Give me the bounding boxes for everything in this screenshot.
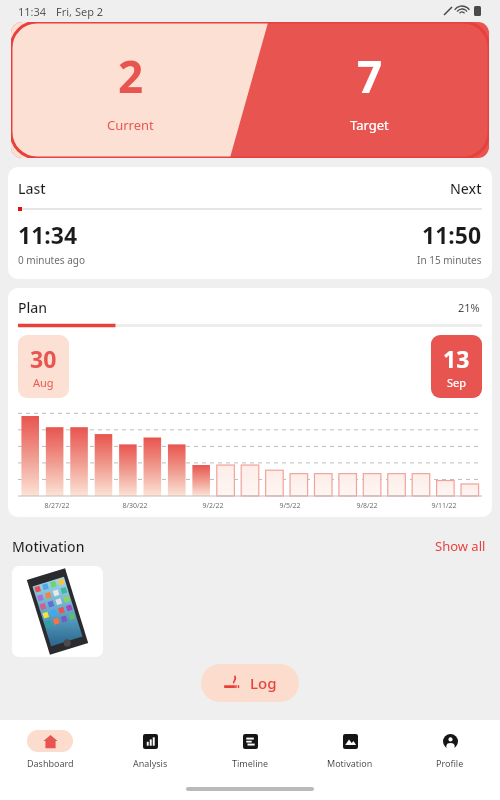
staticText: 21% bbox=[458, 300, 480, 315]
button[interactable]: Log bbox=[201, 664, 299, 702]
staticText: Target bbox=[350, 116, 389, 134]
staticText: 9/5/22 bbox=[279, 501, 301, 511]
staticText: 30 bbox=[30, 343, 57, 374]
button[interactable]: Dashboard bbox=[0, 720, 100, 778]
staticText: Motivation bbox=[327, 757, 373, 769]
button[interactable]: Timeline bbox=[200, 720, 300, 778]
staticText: 0 minutes ago bbox=[18, 253, 86, 267]
staticText: 9/8/22 bbox=[356, 501, 378, 511]
staticText: Plan bbox=[18, 298, 48, 317]
staticText: Log bbox=[250, 673, 277, 693]
button[interactable]: Motivation photo bbox=[12, 566, 103, 657]
staticText: Timeline bbox=[232, 757, 269, 769]
staticText: Motivation bbox=[12, 537, 85, 556]
staticText: Dashboard bbox=[27, 757, 74, 769]
staticText: 11:34 bbox=[18, 4, 47, 19]
staticText: 11:50 bbox=[422, 219, 482, 250]
staticText: 9/11/22 bbox=[431, 501, 457, 511]
staticText: Sep bbox=[447, 375, 467, 390]
staticText: 2 bbox=[118, 46, 144, 106]
staticText: Current bbox=[107, 116, 154, 134]
button[interactable]: Last bbox=[8, 167, 492, 279]
staticText: Show all bbox=[435, 537, 486, 555]
staticText: In 15 minutes bbox=[417, 253, 482, 267]
staticText: Profile bbox=[436, 757, 464, 769]
staticText: Last bbox=[18, 179, 46, 198]
staticText: 13 bbox=[443, 343, 470, 374]
staticText: Aug bbox=[33, 375, 54, 390]
button[interactable]: Profile bbox=[400, 720, 500, 778]
staticText: Fri, Sep 2 bbox=[56, 4, 104, 19]
staticText: 9/2/22 bbox=[202, 501, 224, 511]
staticText: Next bbox=[450, 179, 482, 198]
button[interactable]: 2 bbox=[11, 22, 489, 158]
staticText: Analysis bbox=[133, 757, 168, 769]
staticText: 8/27/22 bbox=[44, 501, 70, 511]
staticText: 7 bbox=[357, 46, 383, 106]
button[interactable]: Analysis bbox=[100, 720, 200, 778]
staticText: 11:34 bbox=[18, 219, 78, 250]
button[interactable]: Motivation bbox=[300, 720, 400, 778]
staticText: 8/30/22 bbox=[122, 501, 148, 511]
button[interactable]: Show all bbox=[433, 535, 488, 557]
button[interactable]: 30 bbox=[18, 335, 69, 398]
button[interactable]: 13 bbox=[431, 335, 482, 398]
button[interactable]: Plan bbox=[8, 288, 492, 517]
